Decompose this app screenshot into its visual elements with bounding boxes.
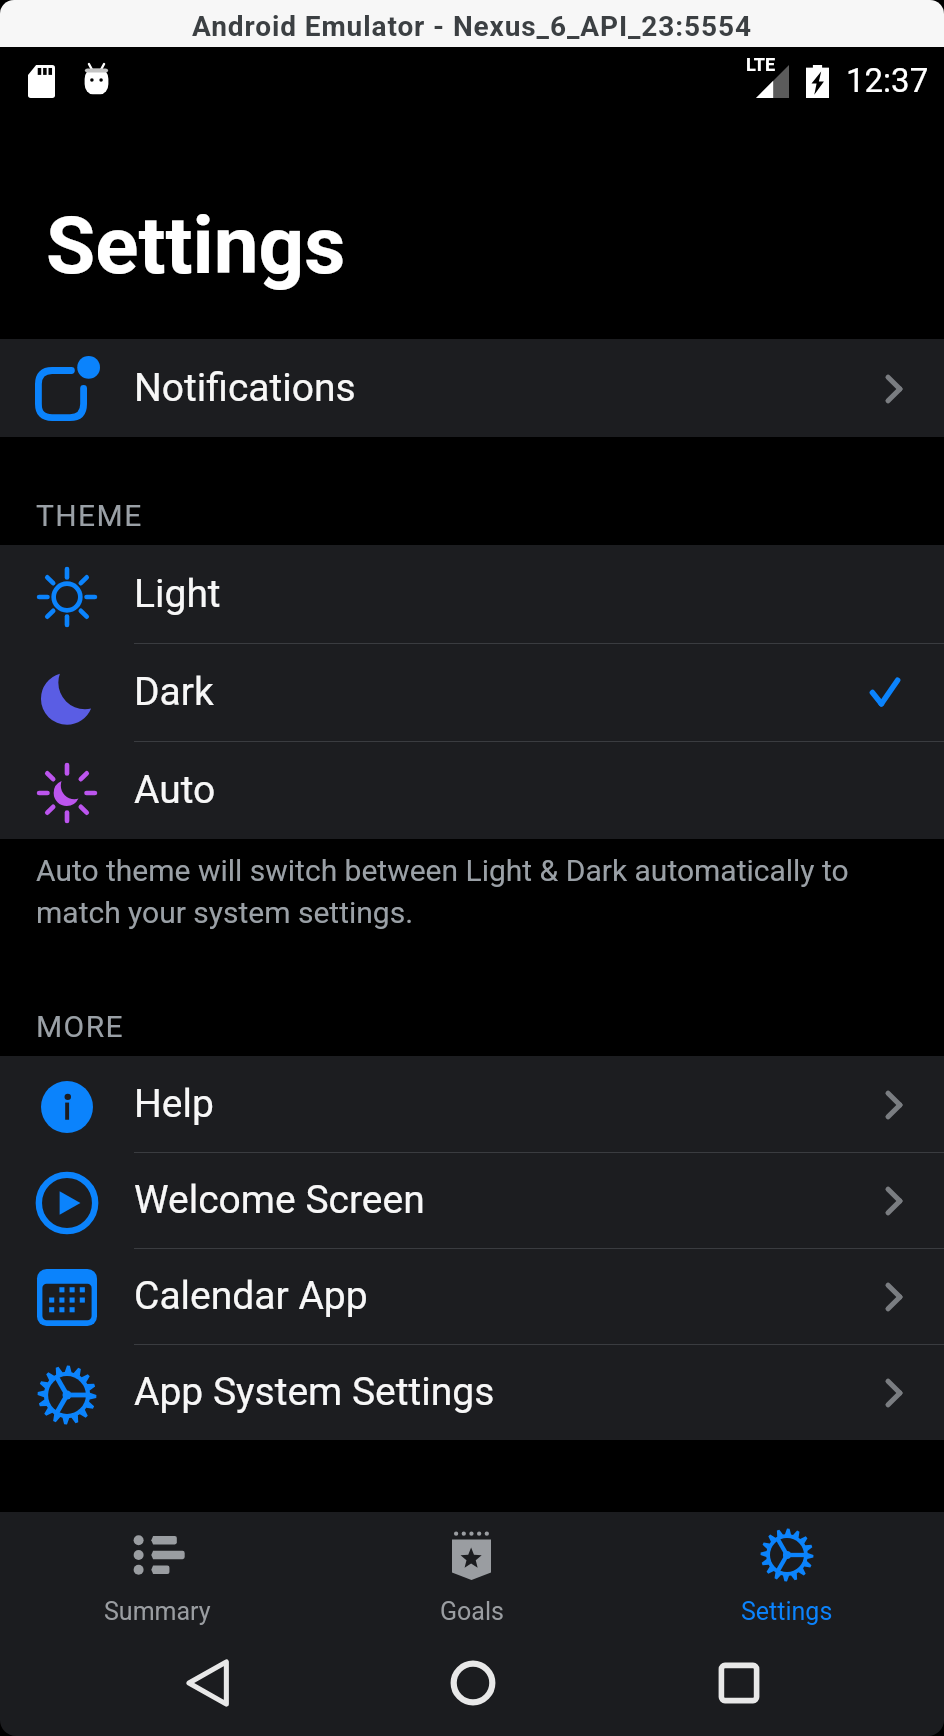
staticText: App System Settings [134,1369,495,1415]
button[interactable]: Notifications [0,339,944,437]
button[interactable]: Goals [314,1512,629,1645]
staticText: Goals [440,1597,504,1626]
staticText: Dark [134,669,214,715]
staticText: Notifications [134,365,356,411]
staticText: Settings [741,1597,833,1626]
button[interactable]: App System Settings [0,1344,944,1440]
staticText: Auto theme will switch between Light & D… [36,853,898,931]
button[interactable]: Recents [689,1645,789,1736]
staticText: MORE [36,1009,124,1044]
button[interactable]: Help [0,1056,944,1152]
button[interactable]: Settings [629,1512,944,1645]
button[interactable]: Light [0,545,944,643]
button[interactable]: Welcome Screen [0,1152,944,1248]
button[interactable]: Summary [0,1512,314,1645]
staticText: Settings [46,199,346,293]
staticText: Help [134,1081,214,1127]
staticText: THEME [36,498,143,533]
button[interactable]: Calendar App [0,1248,944,1344]
button[interactable]: Back [157,1645,257,1736]
staticText: Summary [104,1597,211,1626]
staticText: Welcome Screen [134,1177,425,1223]
button[interactable]: Home [423,1645,523,1736]
staticText: Light [134,571,221,617]
button[interactable]: Dark [0,643,944,741]
button[interactable]: Auto [0,741,944,839]
staticText: Android Emulator - Nexus_6_API_23:5554 [192,10,752,43]
staticText: Calendar App [134,1273,368,1319]
staticText: LTE [746,54,776,75]
staticText: Auto [134,767,216,813]
staticText: 12:37 [846,61,929,100]
